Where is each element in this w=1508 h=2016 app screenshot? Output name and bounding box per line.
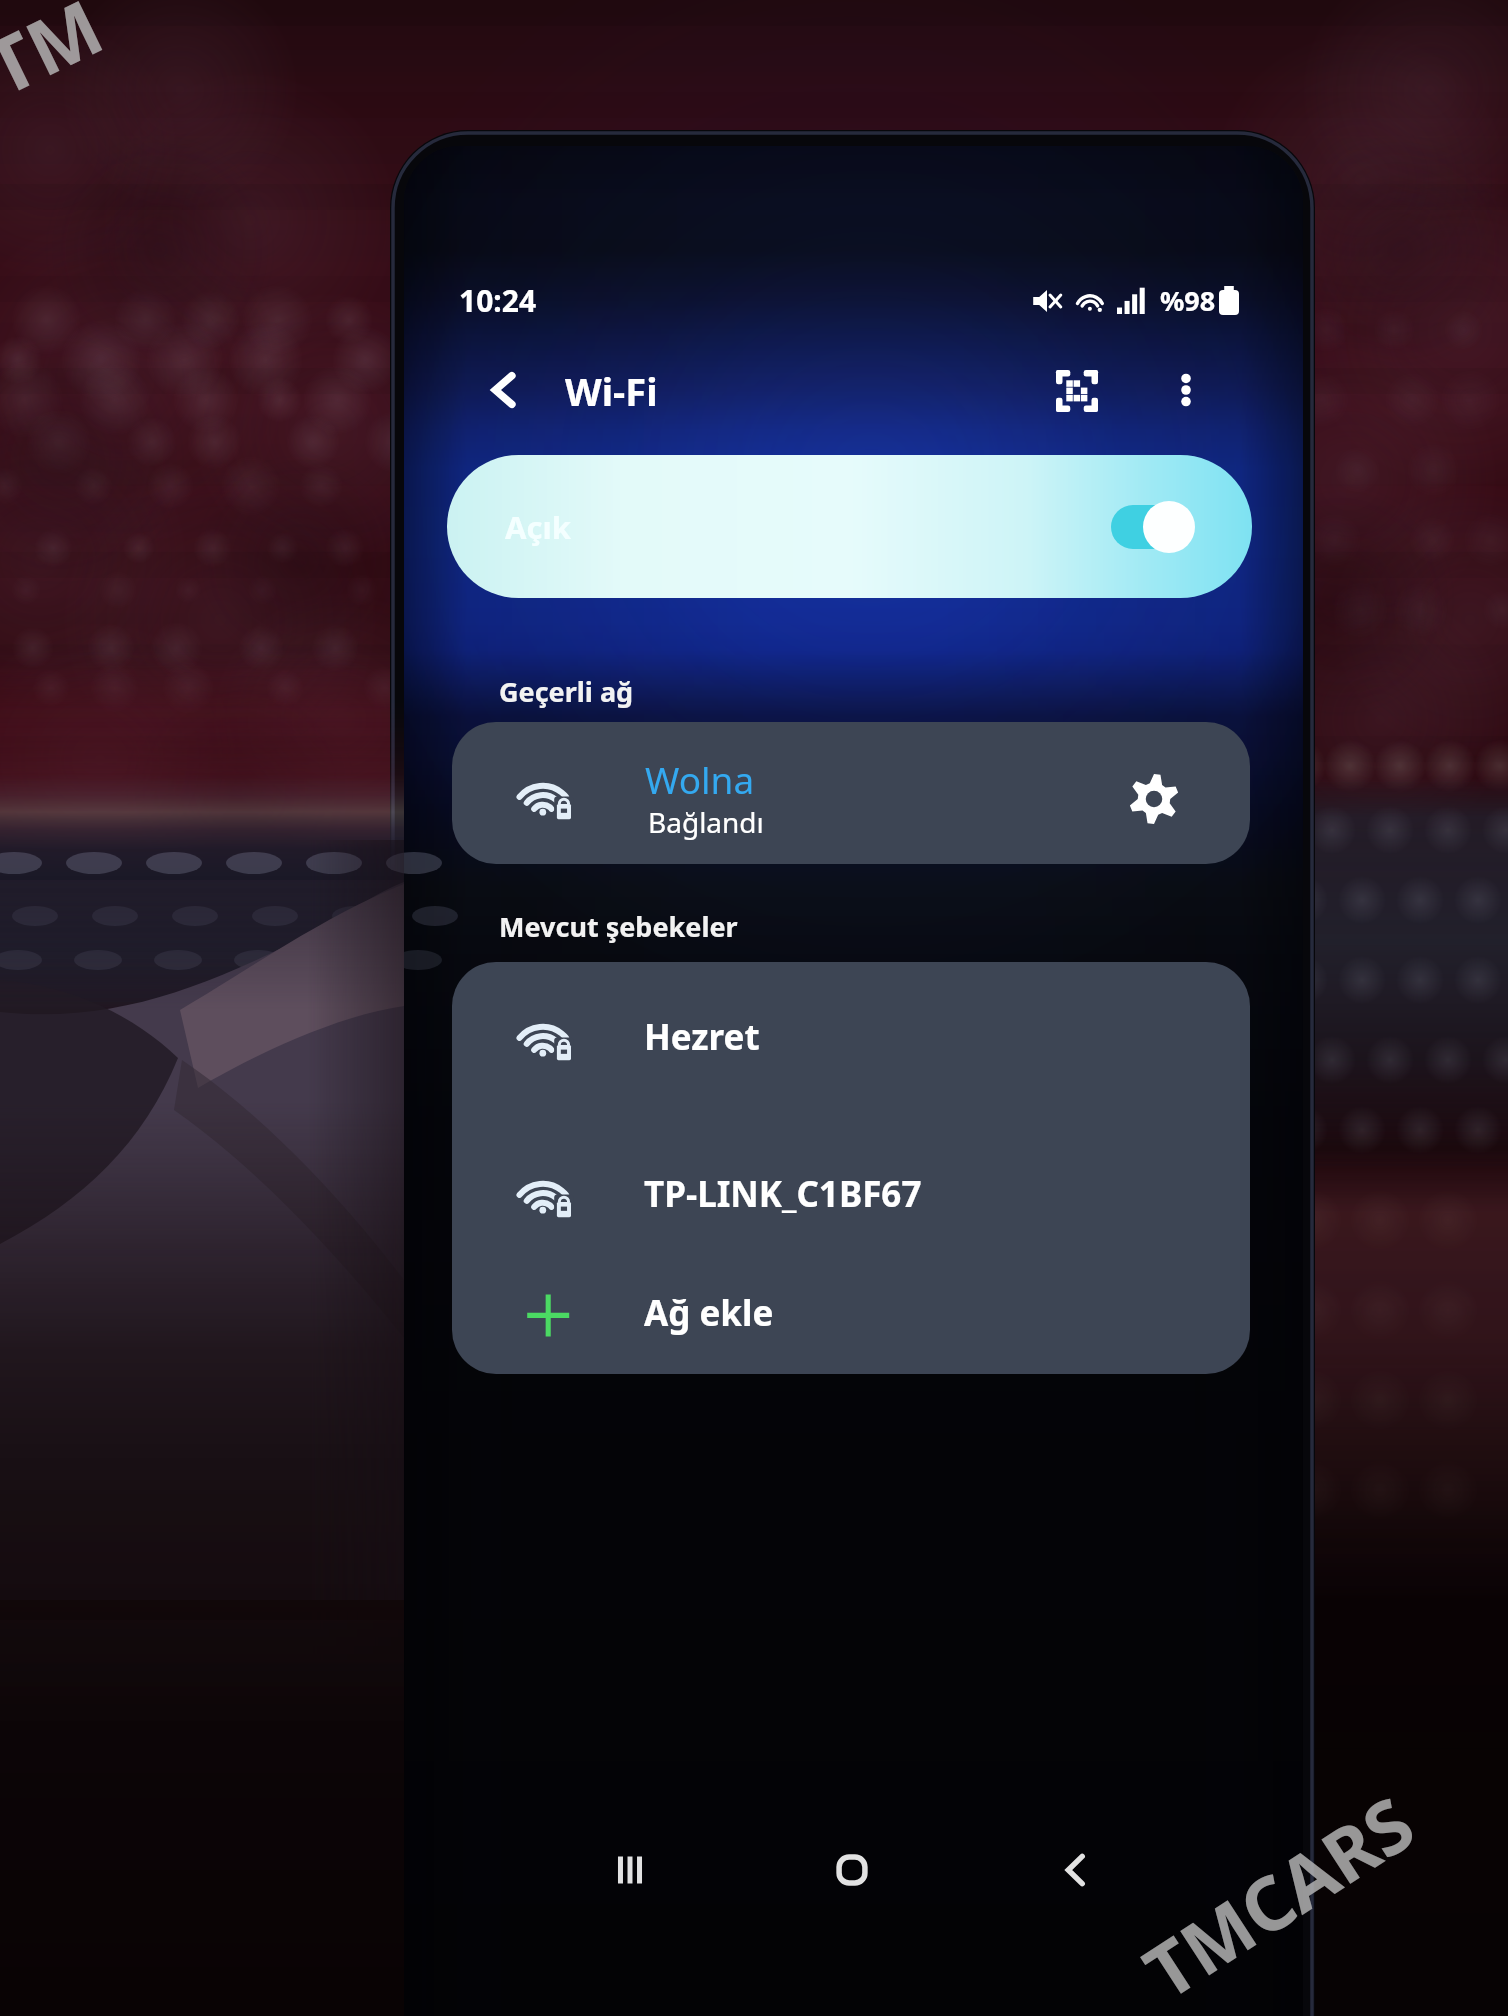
- staticText: Wi-Fi: [565, 365, 658, 417]
- button[interactable]: Home: [778, 1812, 926, 1928]
- staticText: Mevcut şebekeler: [499, 908, 738, 945]
- button[interactable]: Network settings: [1118, 763, 1190, 835]
- button[interactable]: Hezret: [452, 962, 1250, 1112]
- staticText: TP-LINK_C1BF67: [644, 1170, 922, 1218]
- staticText: TMCARS: [1125, 1772, 1432, 2016]
- button[interactable]: Back: [1001, 1812, 1149, 1928]
- button[interactable]: Scan QR code: [1044, 358, 1110, 424]
- staticText: Bağlandı: [648, 803, 764, 841]
- button[interactable]: TP-LINK_C1BF67: [452, 1119, 1250, 1269]
- staticText: 10:24: [459, 280, 537, 321]
- button[interactable]: Recent apps: [556, 1812, 704, 1928]
- staticText: TM: [0, 0, 119, 118]
- staticText: Açık: [505, 506, 571, 548]
- staticText: %98: [1160, 282, 1216, 319]
- button[interactable]: Açık: [447, 455, 1252, 598]
- button[interactable]: More options: [1154, 358, 1218, 422]
- button[interactable]: Wolna: [452, 722, 1250, 864]
- staticText: Hezret: [644, 1013, 760, 1061]
- staticText: Geçerli ağ: [499, 673, 634, 710]
- button[interactable]: Navigate up: [472, 358, 536, 422]
- staticText: Ağ ekle: [644, 1289, 774, 1337]
- button[interactable]: Ağ ekle: [452, 1252, 1250, 1374]
- staticText: Wolna: [645, 754, 755, 804]
